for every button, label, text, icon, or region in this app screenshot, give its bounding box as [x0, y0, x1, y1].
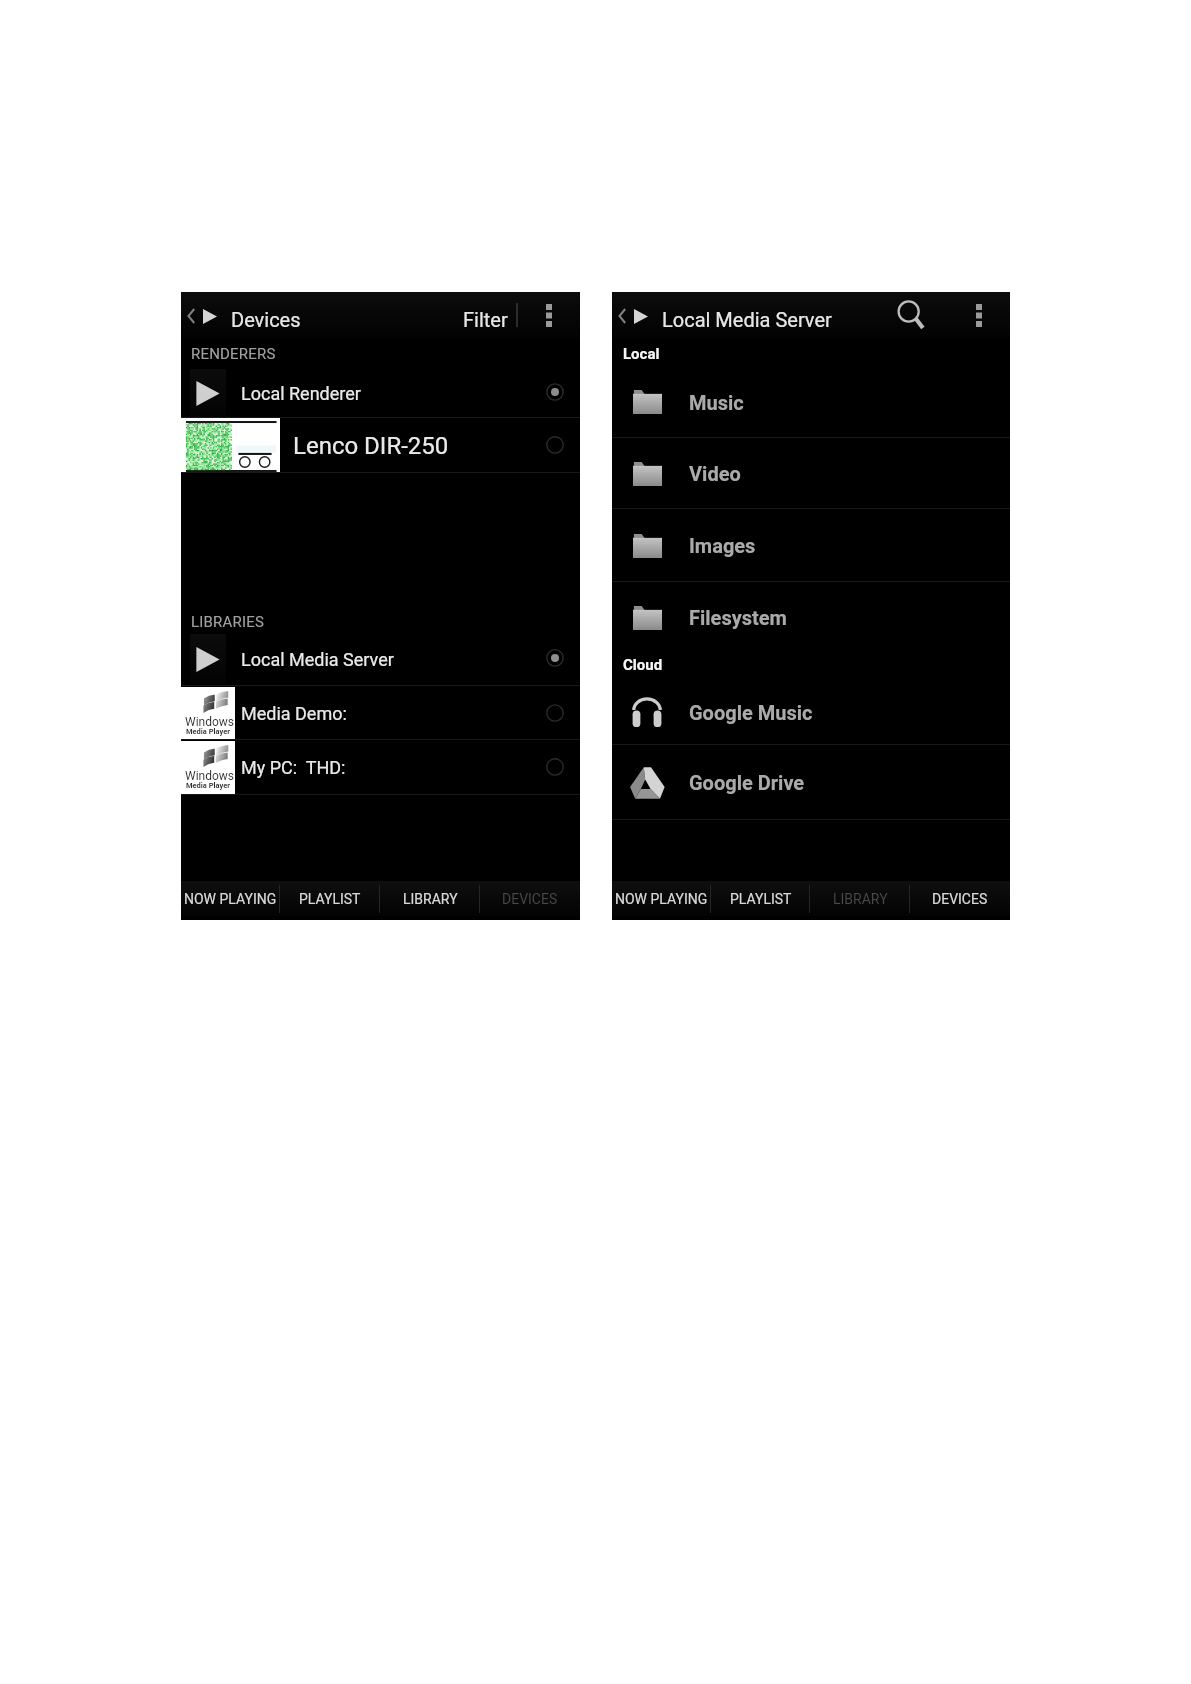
staticText: LIBRARY	[833, 891, 888, 907]
staticText: RENDERERS	[191, 345, 276, 363]
staticText: PLAYLIST	[730, 891, 792, 907]
button[interactable]: Images	[612, 509, 1010, 582]
staticText: Filesystem	[689, 606, 787, 629]
button[interactable]: Music	[612, 366, 1010, 438]
staticText: Windows	[185, 715, 235, 729]
button[interactable]: LIBRARY	[380, 881, 480, 916]
staticText: NOW PLAYING	[184, 891, 277, 907]
button[interactable]: Local Media Server	[181, 633, 580, 686]
button[interactable]: PLAYLIST	[711, 881, 810, 916]
staticText: Video	[689, 462, 741, 485]
button[interactable]: NOW PLAYING	[612, 881, 711, 916]
staticText: PLAYLIST	[299, 891, 361, 907]
button[interactable]: Lenco DIR-250	[181, 418, 580, 473]
staticText: Music	[689, 391, 744, 414]
staticText: Local Renderer	[241, 383, 361, 404]
staticText: Local	[623, 345, 660, 363]
staticText: LIBRARIES	[191, 613, 265, 631]
button[interactable]: Windows	[181, 740, 580, 795]
staticText: Devices	[231, 308, 301, 331]
staticText: Local Media Server	[241, 649, 394, 670]
staticText: DEVICES	[502, 891, 558, 907]
button[interactable]: More options	[537, 292, 561, 338]
staticText: LIBRARY	[403, 891, 458, 907]
staticText: Local Media Server	[662, 308, 832, 331]
staticText: Windows	[185, 769, 235, 783]
button[interactable]: Navigate up	[612, 292, 649, 338]
button[interactable]: More options	[967, 292, 991, 338]
button[interactable]: PLAYLIST	[280, 881, 380, 916]
staticText: NOW PLAYING	[615, 891, 708, 907]
staticText: Cloud	[623, 656, 663, 674]
staticText: Filter	[463, 308, 508, 331]
staticText: My PC: THD:	[241, 757, 346, 778]
staticText: Media Player	[186, 781, 231, 790]
button[interactable]: Filter	[453, 292, 516, 338]
button[interactable]: Windows	[181, 686, 580, 740]
button[interactable]: Local Renderer	[181, 368, 580, 418]
button[interactable]: Google Drive	[612, 745, 1010, 820]
button[interactable]: LIBRARY	[810, 881, 910, 916]
staticText: Google Music	[689, 701, 813, 724]
staticText: Media Player	[186, 727, 231, 736]
button[interactable]: DEVICES	[910, 881, 1010, 916]
staticText: Images	[689, 534, 756, 557]
staticText: Lenco DIR-250	[293, 432, 449, 460]
button[interactable]: DEVICES	[480, 881, 580, 916]
staticText: DEVICES	[932, 891, 988, 907]
button[interactable]: Video	[612, 438, 1010, 509]
button[interactable]: NOW PLAYING	[181, 881, 280, 916]
button[interactable]: Search	[890, 292, 936, 338]
staticText: Google Drive	[689, 771, 805, 794]
button[interactable]: Filesystem	[612, 582, 1010, 653]
button[interactable]: Google Music	[612, 680, 1010, 745]
button[interactable]: Navigate up	[181, 292, 218, 338]
staticText: Media Demo:	[241, 703, 347, 724]
